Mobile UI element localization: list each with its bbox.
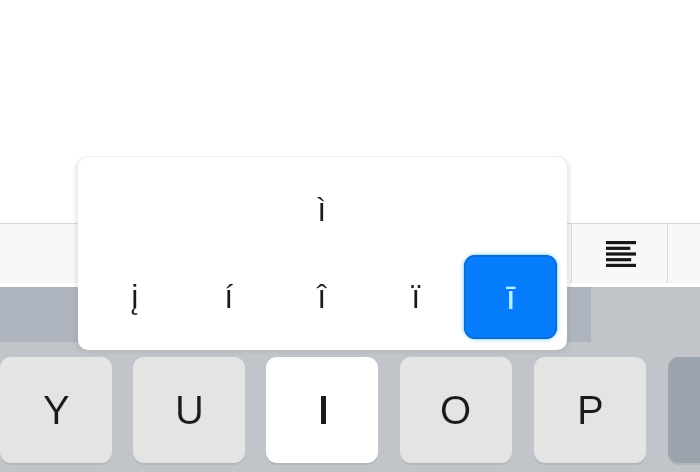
staticText: O bbox=[440, 388, 472, 433]
button[interactable]: ì bbox=[292, 181, 352, 237]
button[interactable]: į bbox=[105, 268, 165, 324]
button[interactable]: U bbox=[133, 357, 245, 463]
staticText: į bbox=[131, 277, 139, 315]
staticText: P bbox=[577, 388, 604, 433]
button[interactable]: O bbox=[400, 357, 512, 463]
staticText: í bbox=[224, 277, 234, 315]
button[interactable]: Backspace bbox=[668, 357, 700, 463]
button[interactable]: ï bbox=[386, 268, 446, 324]
button[interactable]: Y bbox=[0, 357, 112, 463]
staticText: U bbox=[175, 388, 204, 433]
staticText: ī bbox=[506, 278, 516, 316]
button[interactable]: Align left bbox=[573, 224, 668, 283]
button[interactable]: î bbox=[292, 268, 352, 324]
staticText: ï bbox=[411, 277, 421, 315]
staticText: Y bbox=[43, 388, 70, 433]
button[interactable] bbox=[266, 357, 378, 463]
button[interactable]: P bbox=[534, 357, 646, 463]
staticText: î bbox=[317, 277, 327, 315]
button[interactable]: ī bbox=[464, 255, 557, 339]
staticText: ì bbox=[317, 190, 327, 228]
button[interactable]: í bbox=[199, 268, 259, 324]
